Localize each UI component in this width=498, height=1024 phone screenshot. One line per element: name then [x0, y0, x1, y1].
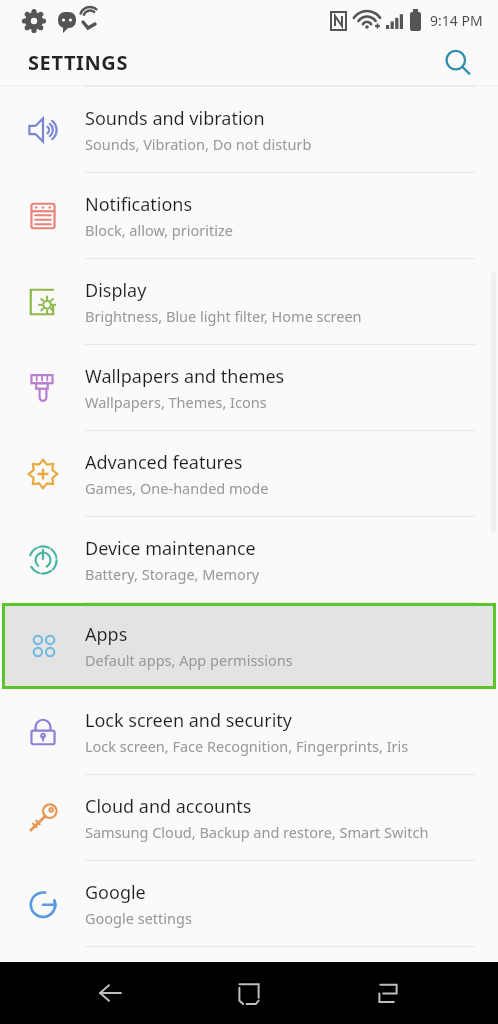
staticText: Lock screen, Face Recognition, Fingerpri…: [85, 736, 409, 756]
staticText: Battery, Storage, Memory: [85, 564, 260, 584]
staticText: Advanced features: [85, 450, 243, 475]
staticText: SETTINGS: [28, 49, 129, 76]
button[interactable]: Recent apps: [358, 963, 418, 1023]
staticText: Cloud and accounts: [85, 794, 252, 819]
button[interactable]: Device maintenance: [0, 517, 498, 602]
staticText: Brightness, Blue light filter, Home scre…: [85, 306, 362, 326]
button[interactable]: Back: [80, 963, 140, 1023]
button[interactable]: Home: [219, 963, 279, 1023]
staticText: Games, One-handed mode: [85, 478, 269, 498]
button[interactable]: Sounds and vibration: [0, 87, 498, 172]
staticText: Google: [85, 880, 146, 905]
staticText: Google settings: [85, 908, 192, 928]
staticText: Display: [85, 278, 147, 303]
button[interactable]: Notifications: [0, 173, 498, 258]
staticText: Wallpapers, Themes, Icons: [85, 392, 267, 412]
button[interactable]: Wallpapers and themes: [0, 345, 498, 430]
staticText: Notifications: [85, 192, 193, 217]
staticText: Default apps, App permissions: [85, 650, 293, 670]
staticText: Samsung Cloud, Backup and restore, Smart…: [85, 822, 429, 842]
staticText: Sounds and vibration: [85, 106, 265, 131]
staticText: Device maintenance: [85, 536, 256, 561]
button[interactable]: Search: [436, 41, 480, 85]
button[interactable]: Apps: [2, 603, 496, 689]
staticText: 9:14 PM: [430, 11, 483, 30]
staticText: Apps: [85, 622, 128, 647]
staticText: Sounds, Vibration, Do not disturb: [85, 134, 312, 154]
button[interactable]: Advanced features: [0, 431, 498, 516]
button[interactable]: Display: [0, 259, 498, 344]
staticText: Wallpapers and themes: [85, 364, 285, 389]
button[interactable]: Google: [0, 861, 498, 946]
staticText: Lock screen and security: [85, 708, 292, 733]
staticText: Block, allow, prioritize: [85, 220, 233, 240]
button[interactable]: Cloud and accounts: [0, 775, 498, 860]
button[interactable]: Lock screen and security: [0, 689, 498, 774]
